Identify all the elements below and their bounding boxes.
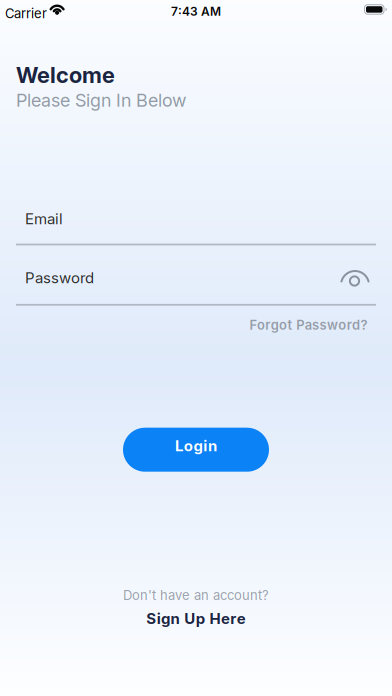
staticText: Please Sign In Below bbox=[16, 89, 186, 111]
staticText: Don't have an account? bbox=[123, 588, 269, 603]
staticText: Welcome bbox=[16, 62, 115, 88]
staticText: 7:43 AM bbox=[171, 4, 221, 18]
staticText: Forgot Password? bbox=[249, 317, 367, 333]
button[interactable]: Sign Up Here bbox=[146, 610, 246, 627]
textField[interactable]: Email bbox=[25, 210, 365, 228]
staticText: Sign Up Here bbox=[146, 610, 246, 627]
button[interactable]: Forgot Password? bbox=[249, 317, 367, 333]
button[interactable]: Show Password bbox=[337, 263, 373, 299]
staticText: Login bbox=[175, 437, 217, 455]
staticText: Email bbox=[25, 210, 63, 228]
staticText: Password bbox=[25, 269, 94, 287]
button[interactable]: Login bbox=[123, 428, 269, 472]
textField[interactable]: Password bbox=[25, 269, 325, 287]
staticText: Carrier bbox=[5, 6, 47, 21]
